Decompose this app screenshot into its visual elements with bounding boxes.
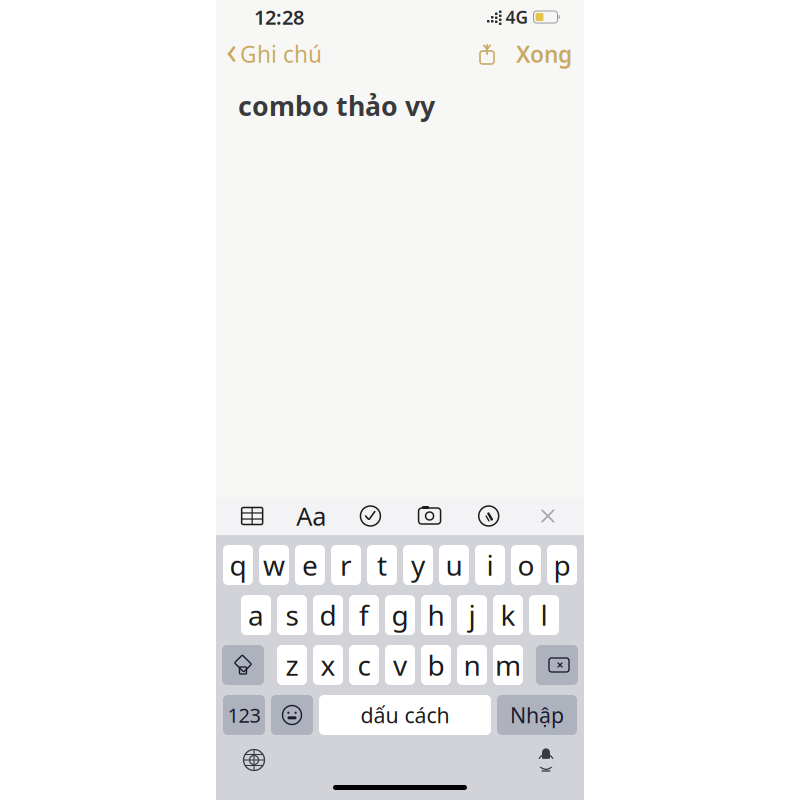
button[interactable]: g: [385, 595, 415, 635]
staticText: l: [540, 596, 547, 634]
staticText: r: [340, 546, 352, 584]
button[interactable]: Ghi chú: [216, 33, 330, 75]
staticText: b: [427, 646, 444, 684]
staticText: o: [517, 546, 534, 584]
button[interactable]: y: [403, 545, 433, 585]
button[interactable]: Camera: [407, 498, 453, 534]
staticText: d: [319, 596, 336, 634]
button[interactable]: r: [331, 545, 361, 585]
staticText: m: [495, 646, 521, 684]
button[interactable]: p: [547, 545, 577, 585]
button[interactable]: v: [385, 645, 415, 685]
staticText: Ghi chú: [240, 39, 322, 69]
staticText: t: [377, 546, 387, 584]
button[interactable]: f: [349, 595, 379, 635]
staticText: combo thảo vy: [238, 88, 435, 123]
staticText: 123: [227, 702, 260, 728]
button[interactable]: u: [439, 545, 469, 585]
button[interactable]: Shift: [222, 645, 264, 685]
button[interactable]: Emoji: [271, 695, 313, 735]
button[interactable]: j: [457, 595, 487, 635]
staticText: v: [393, 646, 407, 684]
staticText: q: [229, 546, 246, 584]
button[interactable]: a: [241, 595, 271, 635]
staticText: w: [263, 546, 285, 584]
button[interactable]: Nhập: [497, 695, 577, 735]
staticText: 12:28: [254, 4, 304, 30]
button[interactable]: c: [349, 645, 379, 685]
button[interactable]: Xong: [506, 33, 584, 75]
staticText: p: [553, 546, 570, 584]
button[interactable]: s: [277, 595, 307, 635]
staticText: Nhập: [510, 701, 564, 729]
button[interactable]: k: [493, 595, 523, 635]
button[interactable]: x: [313, 645, 343, 685]
staticText: dấu cách: [360, 701, 449, 729]
button[interactable]: Next keyboard: [232, 743, 276, 777]
staticText: f: [359, 596, 369, 634]
button[interactable]: w: [259, 545, 289, 585]
staticText: s: [285, 596, 298, 634]
button[interactable]: Delete: [536, 645, 578, 685]
staticText: z: [285, 646, 298, 684]
staticText: x: [320, 646, 335, 684]
button[interactable]: Markup: [466, 498, 512, 534]
staticText: a: [248, 596, 264, 634]
button[interactable]: i: [475, 545, 505, 585]
button[interactable]: Checklist: [347, 498, 393, 534]
button[interactable]: m: [493, 645, 523, 685]
button[interactable]: b: [421, 645, 451, 685]
button[interactable]: e: [295, 545, 325, 585]
staticText: h: [427, 596, 444, 634]
staticText: y: [411, 546, 425, 584]
button[interactable]: o: [511, 545, 541, 585]
button[interactable]: z: [277, 645, 307, 685]
button[interactable]: n: [457, 645, 487, 685]
button[interactable]: Hide keyboard: [525, 498, 571, 534]
button[interactable]: h: [421, 595, 451, 635]
button[interactable]: q: [223, 545, 253, 585]
staticText: j: [468, 596, 475, 634]
button[interactable]: dấu cách: [319, 695, 491, 735]
staticText: g: [391, 596, 408, 634]
button[interactable]: Share: [468, 38, 506, 70]
staticText: 4G: [505, 5, 528, 28]
staticText: n: [463, 646, 480, 684]
staticText: Xong: [516, 39, 572, 69]
button[interactable]: d: [313, 595, 343, 635]
staticText: i: [486, 546, 493, 584]
button[interactable]: Numbers: [223, 695, 265, 735]
staticText: e: [302, 546, 318, 584]
staticText: c: [357, 646, 370, 684]
staticText: Aa: [296, 499, 326, 533]
staticText: u: [445, 546, 462, 584]
button[interactable]: l: [529, 595, 559, 635]
button[interactable]: Table: [229, 498, 275, 534]
staticText: k: [500, 596, 515, 634]
button[interactable]: t: [367, 545, 397, 585]
button[interactable]: Format: [288, 498, 334, 534]
button[interactable]: Dictate: [524, 743, 568, 777]
